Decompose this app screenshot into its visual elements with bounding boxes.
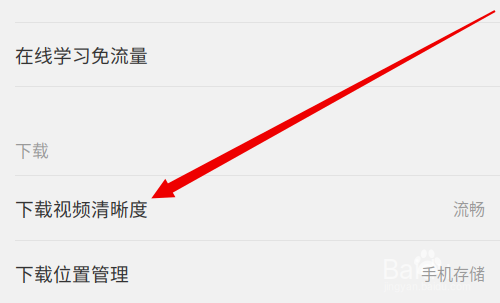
staticText: 在线学习免流量 — [15, 41, 148, 68]
button[interactable]: 下载视频清晰度 — [0, 176, 500, 240]
staticText: 下载位置管理 — [15, 259, 129, 286]
staticText: 流畅 — [453, 196, 485, 220]
button[interactable]: 在线学习免流量 — [0, 23, 500, 86]
staticText: 下载视频清晰度 — [15, 194, 148, 221]
staticText: 下载 — [15, 138, 49, 162]
button[interactable]: 下载位置管理 — [0, 242, 500, 303]
staticText: Baidu — [382, 253, 451, 285]
staticText: 手机存储 — [421, 261, 485, 285]
staticText: jingyan.baidu.com — [384, 280, 471, 293]
